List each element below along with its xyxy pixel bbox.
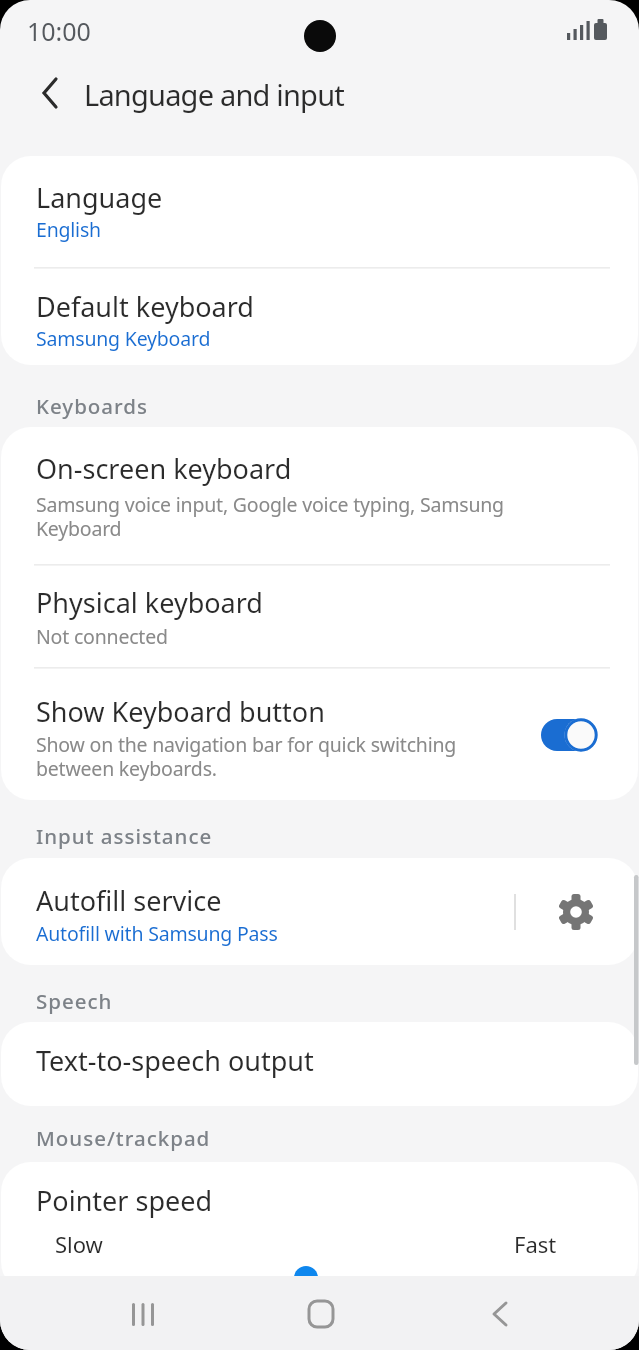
staticText: Samsung voice input, Google voice typing… [36,491,504,518]
staticText: Input assistance [36,822,213,850]
button[interactable] [1,858,515,965]
button[interactable] [72,1276,212,1350]
button[interactable] [1,1022,638,1106]
staticText: Mouse/trackpad [36,1124,211,1152]
staticText: Text-to-speech output [36,1042,314,1079]
staticText: Speech [36,987,113,1015]
button[interactable] [10,62,86,138]
staticText: Slow [55,1229,103,1259]
staticText: Show Keyboard button [36,693,325,730]
button[interactable] [515,858,634,965]
staticText: Pointer speed [36,1182,213,1219]
staticText: Language and input [84,75,344,114]
staticText: Autofill service [36,882,222,919]
button[interactable] [1,1162,638,1276]
button[interactable] [1,427,638,565]
button[interactable] [1,565,638,668]
staticText: Samsung Keyboard [36,325,211,352]
button[interactable] [430,1276,570,1350]
button[interactable] [1,266,638,365]
staticText: Keyboard [36,515,122,542]
staticText: between keyboards. [36,755,217,782]
staticText: English [36,216,101,243]
button[interactable] [1,156,638,266]
staticText: Language [36,179,163,216]
staticText: Not connected [36,623,168,650]
staticText: 10:00 [27,14,91,48]
staticText: Physical keyboard [36,584,263,621]
staticText: On-screen keyboard [36,450,292,487]
staticText: Default keyboard [36,288,254,325]
staticText: Fast [514,1229,557,1259]
staticText: Autofill with Samsung Pass [36,920,278,947]
staticText: Show on the navigation bar for quick swi… [36,731,457,758]
button[interactable] [1,668,638,800]
button[interactable] [250,1276,390,1350]
staticText: Keyboards [36,392,149,420]
